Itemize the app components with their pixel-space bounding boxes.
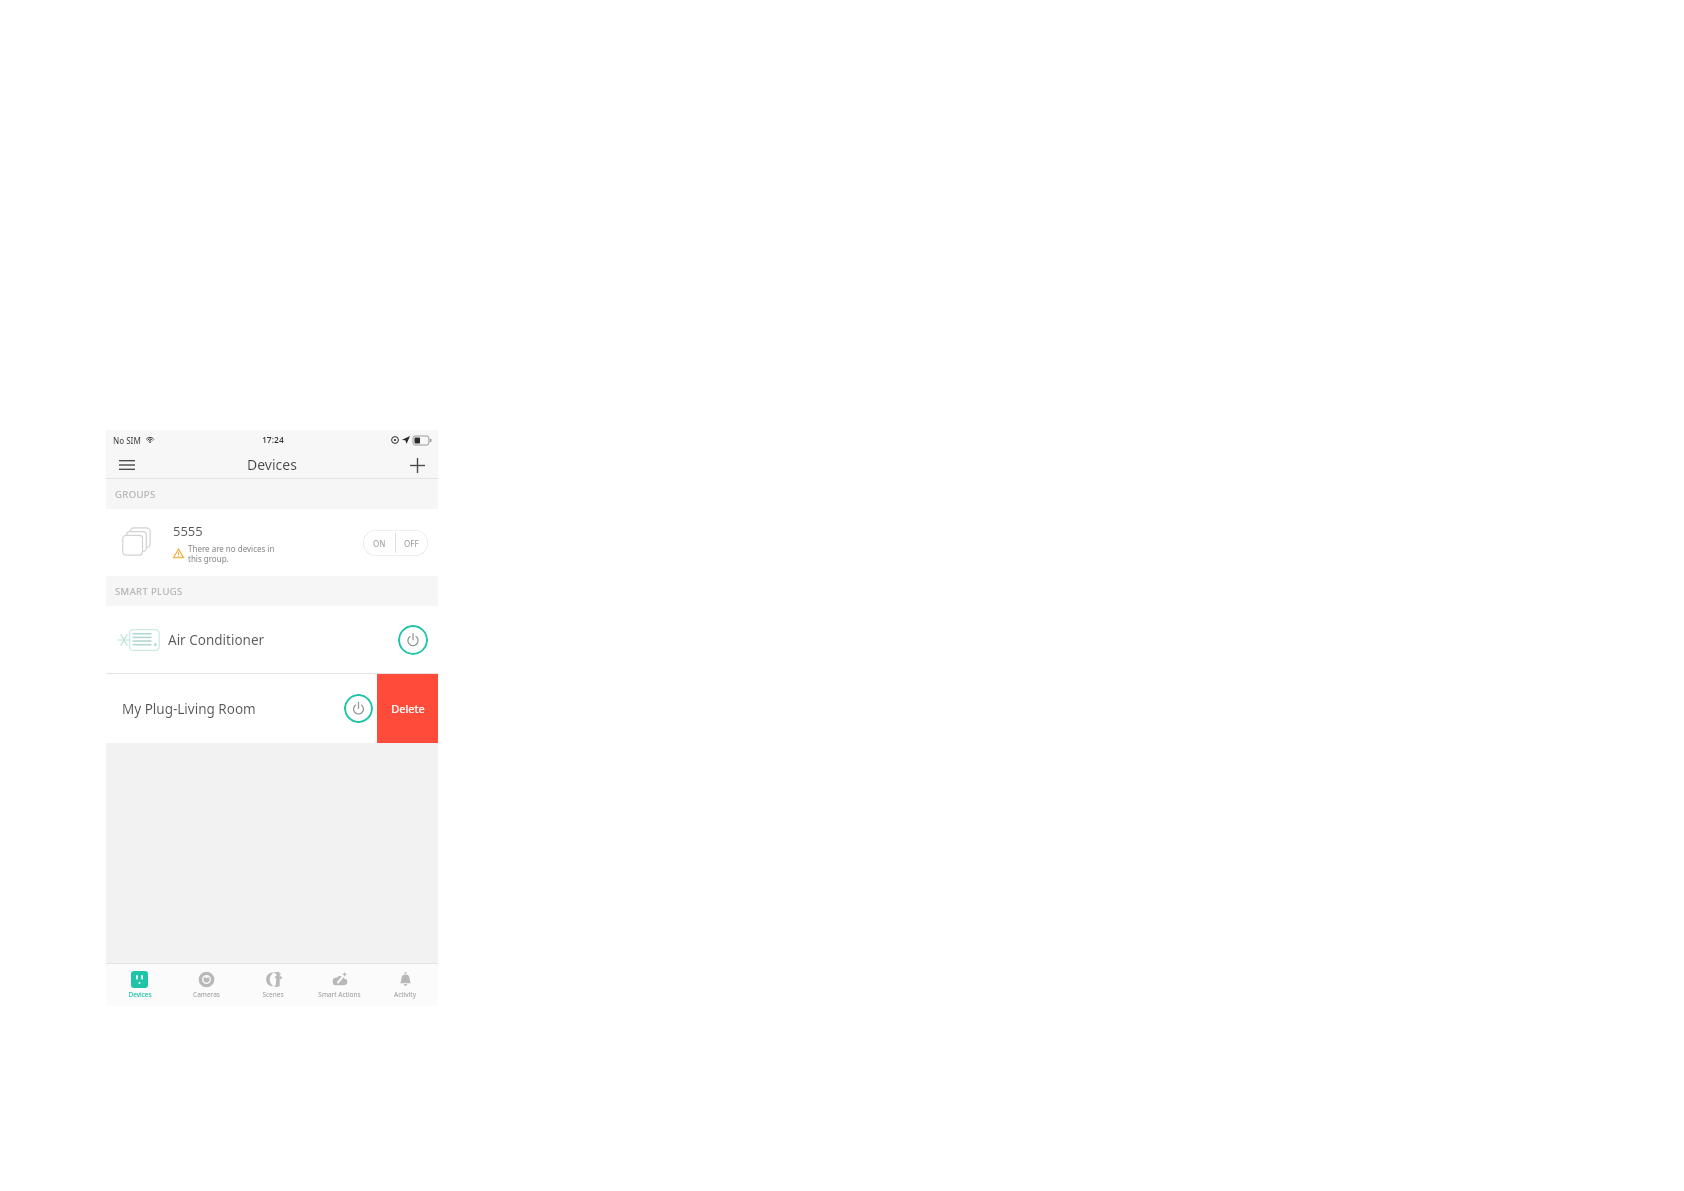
staticText: Activity — [394, 990, 416, 999]
button[interactable]: Activity — [372, 964, 438, 1006]
staticText: ON — [373, 538, 386, 549]
staticText: GROUPS — [115, 488, 156, 501]
button[interactable]: My Plug-Living Room — [106, 674, 377, 743]
button[interactable]: Scenes — [240, 964, 306, 1006]
button[interactable]: Add device — [404, 452, 430, 478]
staticText: Cameras — [193, 990, 220, 999]
staticText: Smart Actions — [318, 990, 361, 999]
staticText: My Plug-Living Room — [122, 700, 344, 718]
button[interactable]: Power toggle — [398, 625, 428, 655]
staticText: No SIM — [113, 435, 141, 446]
staticText: 17:24 — [262, 434, 284, 446]
staticText: There are no devices in this group. — [188, 543, 275, 564]
button[interactable]: Menu — [114, 452, 140, 478]
button[interactable]: Smart Actions — [306, 964, 372, 1006]
staticText: Air Conditioner — [168, 631, 398, 649]
button[interactable]: Air Conditioner — [106, 606, 438, 673]
button[interactable]: Cameras — [173, 964, 240, 1006]
staticText: 5555 — [173, 522, 203, 540]
button[interactable]: ON — [363, 530, 428, 556]
button[interactable]: Delete — [377, 674, 438, 743]
staticText: Devices — [128, 990, 152, 999]
button[interactable]: 5555 — [106, 509, 438, 576]
staticText: Devices — [247, 455, 297, 474]
staticText: Scenes — [262, 990, 284, 999]
button[interactable]: Devices — [106, 964, 173, 1006]
staticText: Delete — [391, 701, 425, 716]
staticText: SMART PLUGS — [115, 585, 183, 598]
staticText: OFF — [404, 538, 419, 549]
button[interactable]: Power toggle — [344, 694, 373, 723]
